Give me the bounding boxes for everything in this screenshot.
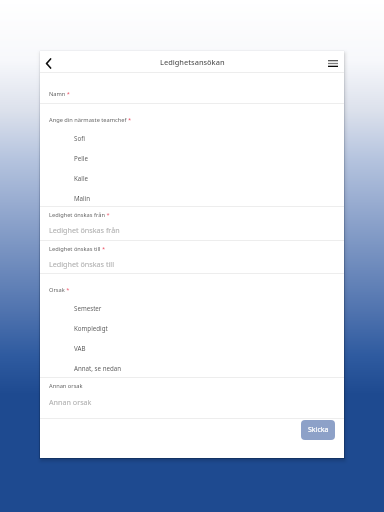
staticText: Ledighet önskas från * [49, 211, 110, 219]
staticText: Kalle [74, 174, 88, 182]
staticText: Ledighet önskas till * [49, 245, 106, 253]
staticText: Pelle [74, 154, 88, 162]
staticText: Annat, se nedan [74, 364, 122, 372]
staticText: Ledighet önskas från [49, 225, 120, 235]
button[interactable]: Kalle [40, 170, 344, 190]
staticText: Skicka [308, 425, 329, 435]
button[interactable]: Skicka [301, 420, 335, 440]
button[interactable]: Sofi [40, 130, 344, 150]
button[interactable]: Semester [40, 300, 344, 320]
staticText: Semester [74, 304, 102, 312]
staticText: Kompledigt [74, 324, 108, 332]
button[interactable]: Back [39, 54, 57, 72]
staticText: Orsak * [49, 286, 70, 294]
staticText: Ange din närmaste teamchef * [49, 116, 132, 124]
staticText: VAB [74, 344, 86, 352]
staticText: Namn * [49, 90, 70, 98]
staticText: Annan orsak [49, 397, 92, 407]
button[interactable]: Pelle [40, 150, 344, 170]
staticText: Sofi [74, 134, 85, 142]
button[interactable]: Menu [324, 54, 342, 72]
staticText: Malin [74, 194, 91, 202]
staticText: Annan orsak [49, 382, 83, 390]
button[interactable]: Annat, se nedan [40, 360, 344, 380]
button[interactable]: Malin [40, 190, 344, 210]
staticText: Ledighet önskas till [49, 259, 115, 269]
button[interactable]: Kompledigt [40, 320, 344, 340]
staticText: Ledighetsansökan [160, 57, 225, 67]
button[interactable]: VAB [40, 340, 344, 360]
